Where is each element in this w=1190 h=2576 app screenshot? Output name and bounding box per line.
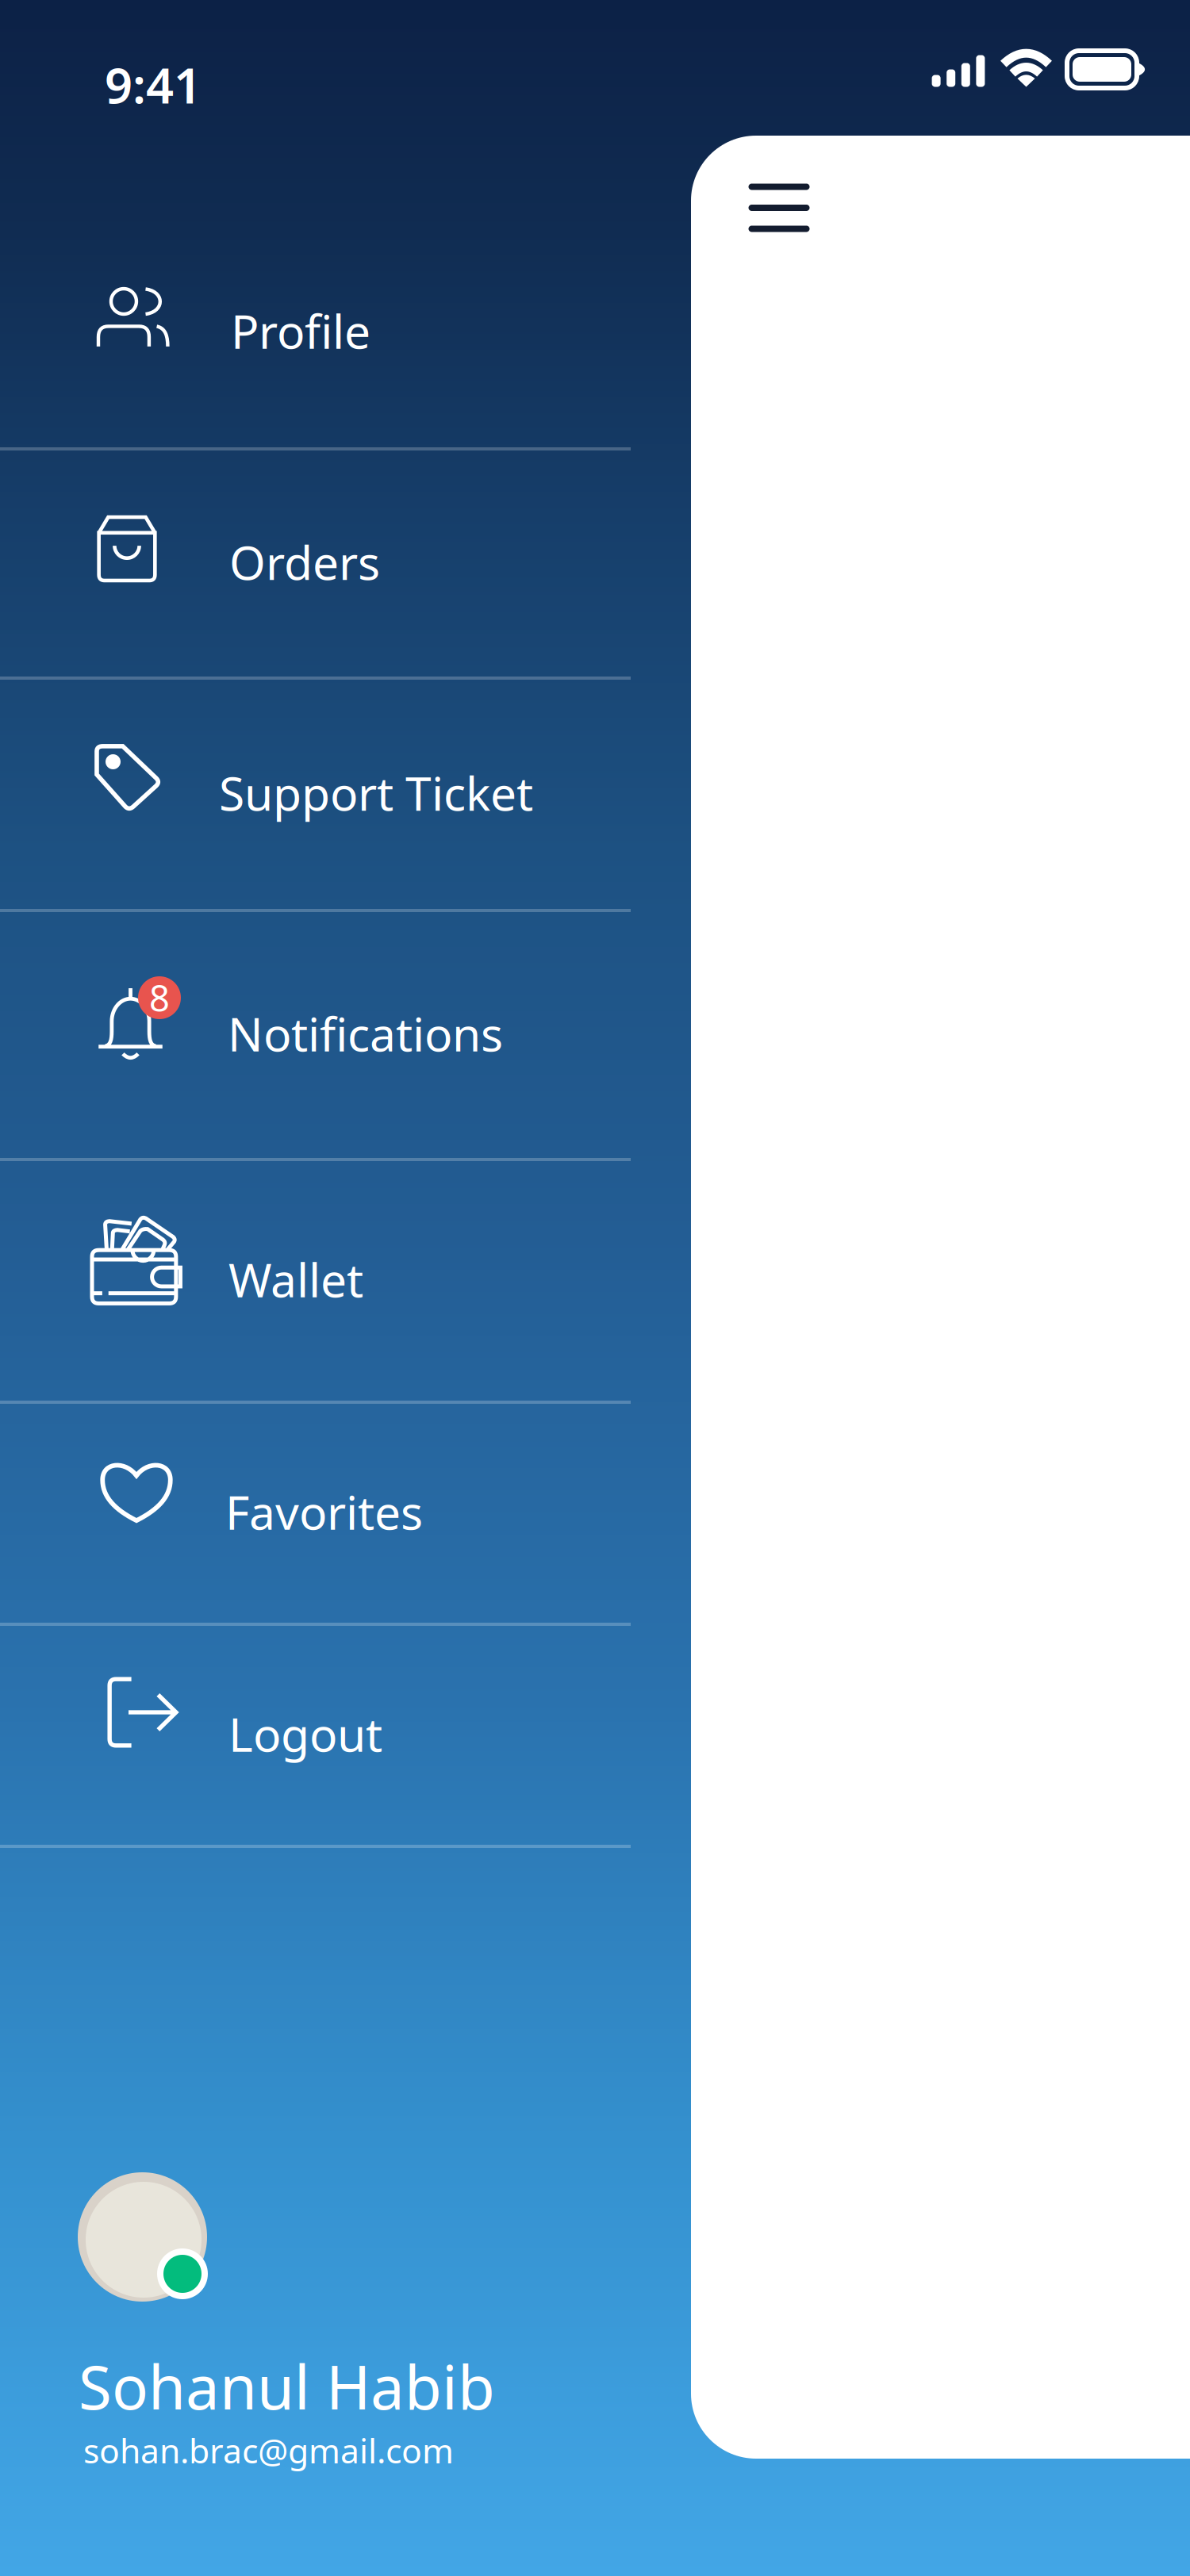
- staticText: Orders: [229, 531, 380, 593]
- staticText: Support Ticket: [219, 762, 533, 824]
- button[interactable]: Sohanul Habib: [0, 2172, 631, 2482]
- staticText: Sohanul Habib: [79, 2346, 495, 2426]
- staticText: Favorites: [225, 1481, 423, 1543]
- button[interactable]: Menu: [724, 156, 835, 259]
- button[interactable]: Profile: [0, 214, 631, 447]
- staticText: Wallet: [228, 1248, 363, 1310]
- staticText: Profile: [231, 300, 370, 362]
- button[interactable]: Orders: [0, 447, 631, 677]
- button[interactable]: Logout: [0, 1623, 631, 1845]
- staticText: 8: [149, 974, 170, 1022]
- staticText: sohan.brac@gmail.com: [83, 2428, 454, 2473]
- staticText: Notifications: [228, 1002, 503, 1064]
- button[interactable]: 8: [0, 909, 631, 1158]
- button[interactable]: Favorites: [0, 1401, 631, 1623]
- button[interactable]: Wallet: [0, 1158, 631, 1401]
- staticText: 9:41: [105, 52, 202, 117]
- staticText: Logout: [228, 1703, 382, 1765]
- button[interactable]: Support Ticket: [0, 677, 631, 909]
